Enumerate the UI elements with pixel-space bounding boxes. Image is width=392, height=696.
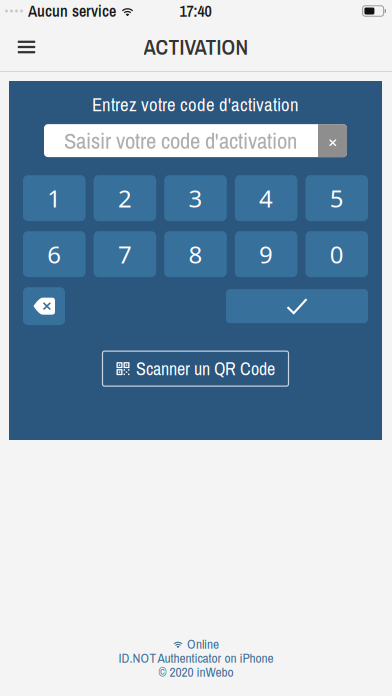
button[interactable]: 9 <box>235 231 297 277</box>
staticText: 0 <box>330 238 344 270</box>
staticText: 7 <box>118 238 132 270</box>
button[interactable]: 3 <box>164 175 227 221</box>
button[interactable]: Effacer un caractère <box>23 287 65 325</box>
staticText: × <box>328 129 336 152</box>
staticText: 4 <box>259 182 273 214</box>
staticText: Scanner un QR Code <box>136 356 275 381</box>
staticText: 1 <box>47 182 61 214</box>
staticText: 17:40 <box>179 0 211 22</box>
button[interactable]: 0 <box>305 231 368 277</box>
button[interactable]: 7 <box>94 231 156 277</box>
button[interactable]: Valider <box>226 289 368 323</box>
staticText: © 2020 inWebo <box>158 663 233 681</box>
staticText: 8 <box>188 238 202 270</box>
button[interactable]: 1 <box>23 175 86 221</box>
staticText: Online <box>187 635 219 653</box>
button[interactable]: Effacer <box>318 124 347 157</box>
staticText: ACTIVATION <box>143 33 248 61</box>
staticText: 9 <box>259 238 273 270</box>
staticText: Entrez votre code d'activation <box>92 92 299 117</box>
button[interactable]: Menu <box>0 25 53 69</box>
staticText: 5 <box>330 182 344 214</box>
button[interactable]: 4 <box>235 175 297 221</box>
staticText: 2 <box>118 182 132 214</box>
button[interactable]: 5 <box>305 175 368 221</box>
staticText: Saisir votre code d'activation <box>64 125 297 156</box>
button[interactable]: 8 <box>164 231 227 277</box>
staticText: 6 <box>47 238 61 270</box>
staticText: Aucun service <box>28 0 116 22</box>
button[interactable]: 6 <box>23 231 86 277</box>
staticText: ID.NOT Authenticator on iPhone <box>118 649 273 667</box>
button[interactable]: 2 <box>94 175 156 221</box>
button[interactable]: Scanner un QR Code <box>102 351 288 386</box>
staticText: 3 <box>188 182 202 214</box>
